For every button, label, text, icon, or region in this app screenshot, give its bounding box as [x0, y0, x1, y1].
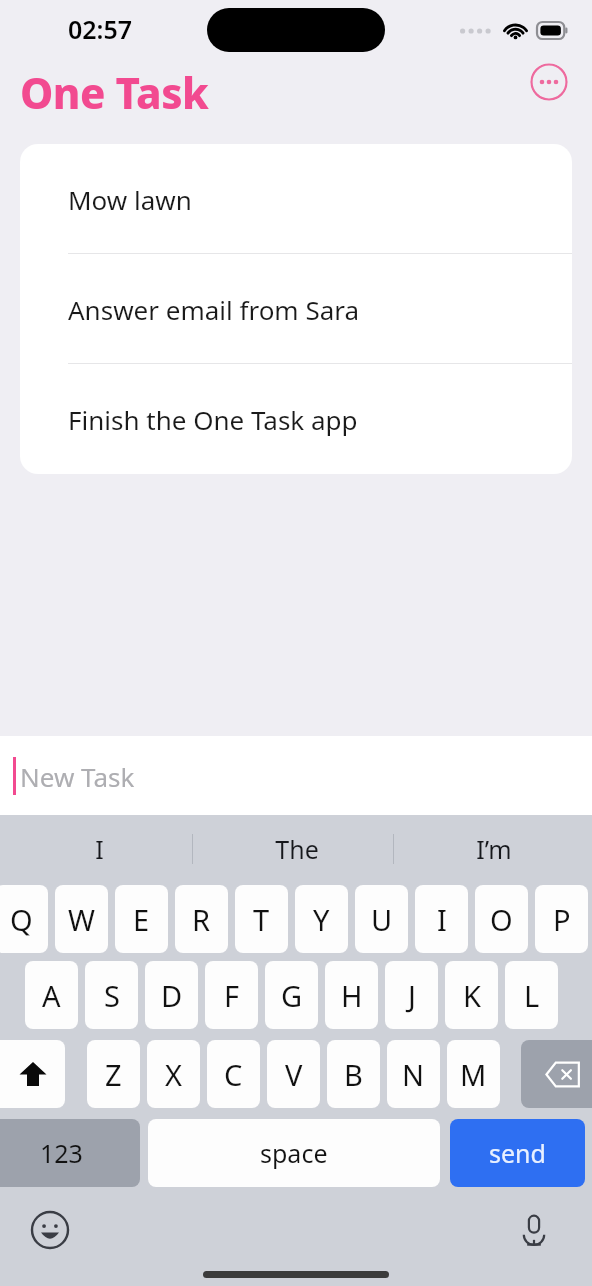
staticText: Answer email from Sara [68, 292, 360, 327]
staticText: S [104, 976, 120, 1015]
staticText: F [224, 976, 240, 1015]
button[interactable]: send [450, 1119, 585, 1187]
button[interactable]: Mow lawn [20, 144, 572, 254]
button[interactable]: J [385, 961, 438, 1029]
button[interactable]: New Task [0, 736, 592, 815]
staticText: I [95, 832, 104, 866]
button[interactable]: D [145, 961, 198, 1029]
staticText: I [437, 900, 447, 939]
staticText: D [161, 976, 183, 1015]
button[interactable]: Backspace [521, 1040, 592, 1108]
staticText: E [133, 900, 150, 939]
staticText: O [490, 900, 513, 939]
button[interactable]: Answer email from Sara [20, 254, 572, 364]
button[interactable]: U [355, 885, 408, 953]
button[interactable]: 123 [0, 1119, 140, 1187]
staticText: P [553, 900, 571, 939]
staticText: X [165, 1055, 182, 1094]
staticText: L [524, 976, 540, 1015]
button[interactable]: V [267, 1040, 320, 1108]
staticText: T [253, 900, 270, 939]
staticText: Mow lawn [68, 182, 192, 217]
button[interactable]: Y [295, 885, 348, 953]
staticText: N [402, 1055, 425, 1094]
staticText: W [68, 900, 95, 939]
button[interactable]: B [327, 1040, 380, 1108]
button[interactable]: L [505, 961, 558, 1029]
button[interactable]: H [325, 961, 378, 1029]
button[interactable]: K [445, 961, 498, 1029]
staticText: send [489, 1136, 546, 1170]
button[interactable]: X [147, 1040, 200, 1108]
button[interactable]: Emoji keyboard [29, 1209, 71, 1251]
staticText: Q [10, 900, 33, 939]
button[interactable]: E [115, 885, 168, 953]
staticText: M [460, 1055, 487, 1094]
staticText: K [463, 976, 481, 1015]
staticText: H [341, 976, 363, 1015]
button[interactable]: N [387, 1040, 440, 1108]
button[interactable]: S [85, 961, 138, 1029]
staticText: Finish the One Task app [68, 402, 358, 437]
button[interactable]: Voice input [513, 1209, 555, 1251]
staticText: A [42, 976, 61, 1015]
staticText: One Task [20, 64, 209, 121]
button[interactable]: P [535, 885, 588, 953]
staticText: B [344, 1055, 363, 1094]
staticText: J [408, 976, 416, 1015]
button[interactable]: Shift [0, 1040, 65, 1108]
staticText: space [260, 1136, 328, 1170]
button[interactable]: I [415, 885, 468, 953]
button[interactable]: I [0, 815, 198, 883]
staticText: 123 [40, 1136, 83, 1170]
button[interactable]: F [205, 961, 258, 1029]
button[interactable]: W [55, 885, 108, 953]
button[interactable]: space [148, 1119, 440, 1187]
staticText: R [192, 900, 211, 939]
button[interactable]: A [25, 961, 78, 1029]
staticText: Z [105, 1055, 122, 1094]
staticText: G [281, 976, 303, 1015]
button[interactable]: Z [87, 1040, 140, 1108]
button[interactable]: G [265, 961, 318, 1029]
button[interactable]: I’m [395, 815, 592, 883]
button[interactable]: T [235, 885, 288, 953]
staticText: V [285, 1055, 303, 1094]
button[interactable]: O [475, 885, 528, 953]
button[interactable]: The [198, 815, 395, 883]
staticText: C [224, 1055, 243, 1094]
button[interactable]: C [207, 1040, 260, 1108]
staticText: 02:57 [68, 12, 133, 46]
button[interactable]: M [447, 1040, 500, 1108]
staticText: Y [313, 900, 330, 939]
staticText: New Task [20, 759, 135, 794]
button[interactable]: R [175, 885, 228, 953]
button[interactable]: Finish the One Task app [20, 364, 572, 474]
staticText: The [275, 832, 319, 866]
staticText: U [371, 900, 393, 939]
staticText: I’m [476, 832, 512, 866]
button[interactable]: Q [0, 885, 48, 953]
button[interactable]: More options [530, 63, 568, 101]
